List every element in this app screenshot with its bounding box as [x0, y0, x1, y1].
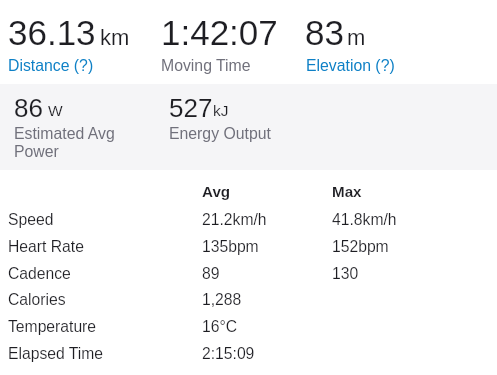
staticText: 16°C [202, 318, 238, 336]
staticText: Cadence [8, 265, 71, 283]
staticText: Max [332, 183, 362, 200]
staticText: Energy Output [169, 125, 271, 143]
staticText: Temperature [8, 318, 97, 336]
button[interactable]: Distance (?) [8, 57, 94, 75]
staticText: Heart Rate [8, 238, 84, 256]
staticText: 36.13 [8, 13, 96, 52]
staticText: Avg [202, 183, 231, 200]
staticText: 21.2km/h [202, 211, 267, 229]
staticText: Distance (?) [8, 57, 94, 75]
staticText: Elapsed Time [8, 345, 104, 363]
staticText: 1,288 [202, 291, 242, 309]
staticText: Estimated Avg Power [14, 125, 115, 161]
staticText: 2:15:09 [202, 345, 255, 363]
staticText: Calories [8, 291, 66, 309]
staticText: 1:42:07 [161, 13, 278, 52]
staticText: 89 [202, 265, 220, 283]
staticText: W [48, 102, 63, 119]
staticText: m [347, 25, 366, 50]
staticText: 130 [332, 265, 359, 283]
staticText: km [100, 25, 130, 50]
staticText: 527 [169, 93, 213, 122]
staticText: Moving Time [161, 57, 251, 75]
staticText: 86 [14, 93, 43, 122]
staticText: Speed [8, 211, 54, 229]
button[interactable]: Elevation (?) [306, 57, 395, 75]
staticText: 83 [305, 13, 344, 52]
staticText: 41.8km/h [332, 211, 397, 229]
staticText: 152bpm [332, 238, 389, 256]
staticText: 135bpm [202, 238, 259, 256]
staticText: kJ [213, 102, 229, 119]
staticText: Elevation (?) [306, 57, 395, 75]
